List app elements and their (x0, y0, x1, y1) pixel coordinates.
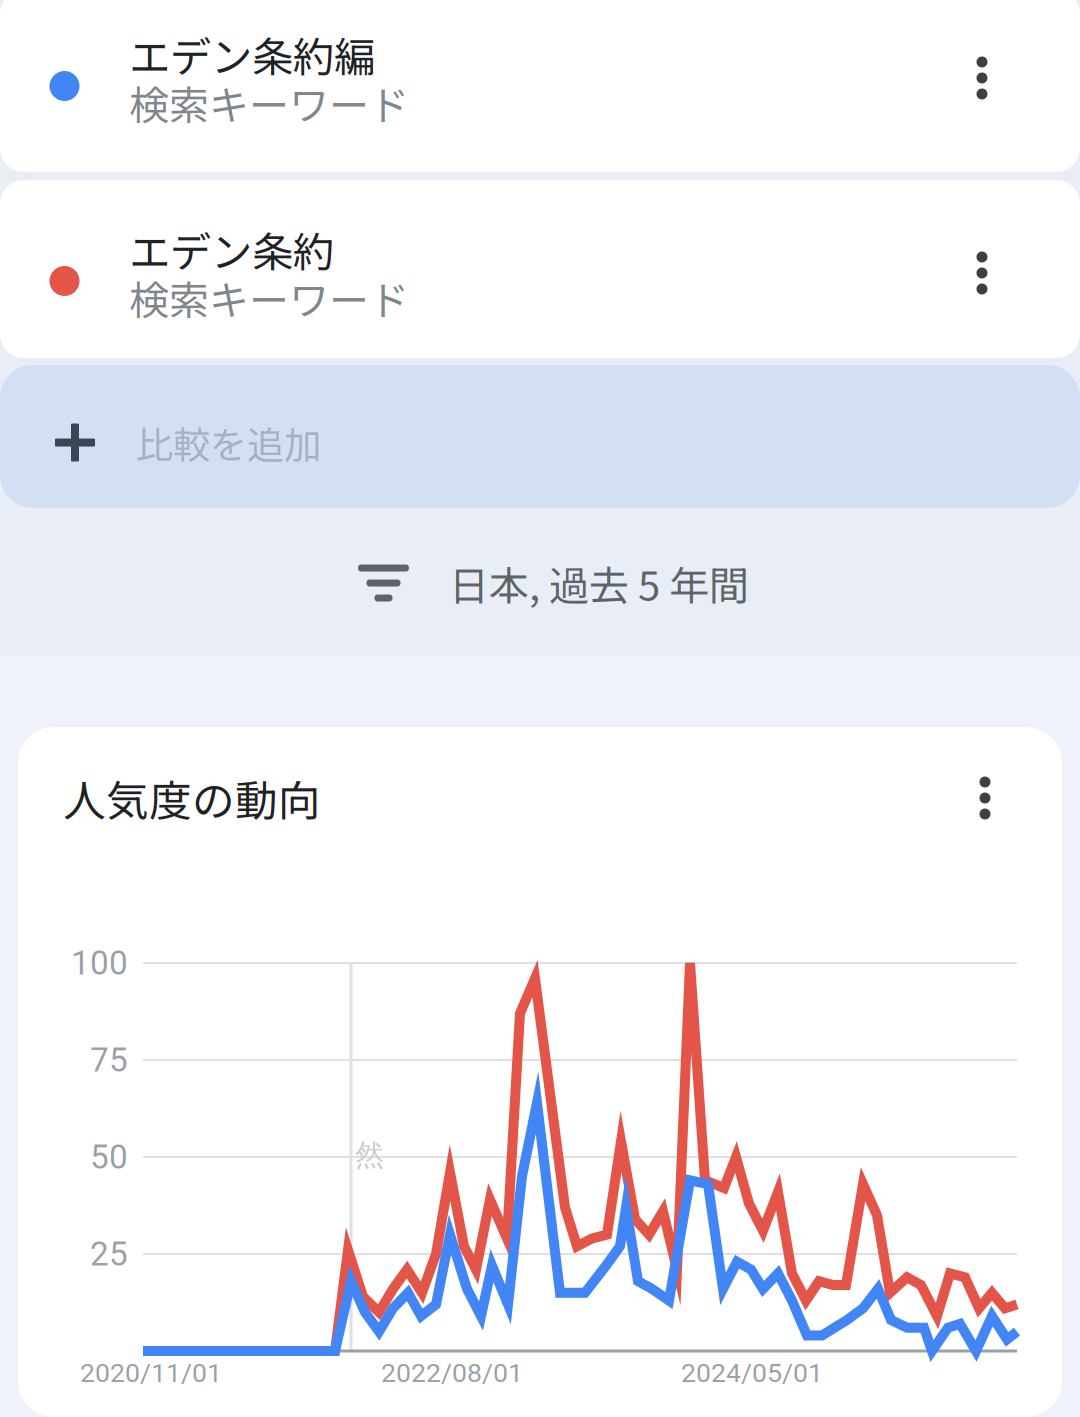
staticText: 50 (90, 1141, 128, 1173)
staticText: エデン条約 (129, 225, 334, 274)
button[interactable]: エデン条約編 (0, 0, 1080, 172)
staticText: 2024/05/01 (681, 1360, 823, 1386)
staticText: 2020/11/01 (80, 1360, 222, 1386)
staticText: 然 (355, 1140, 384, 1170)
staticText: 比較を追加 (136, 420, 321, 465)
staticText: 75 (90, 1044, 128, 1076)
staticText: 2022/08/01 (381, 1360, 523, 1386)
staticText: 検索キーワード (129, 79, 409, 126)
button[interactable]: 日本, 過去 5 年間 (0, 546, 1080, 620)
button[interactable]: 比較を追加 (0, 365, 1080, 508)
staticText: 日本, 過去 5 年間 (449, 559, 749, 607)
staticText: エデン条約編 (129, 30, 375, 79)
staticText: 100 (71, 947, 128, 979)
button[interactable]: エデン条約 (0, 180, 1080, 358)
staticText: 25 (90, 1238, 128, 1270)
staticText: 人気度の動向 (63, 773, 321, 823)
staticText: 検索キーワード (129, 274, 409, 321)
